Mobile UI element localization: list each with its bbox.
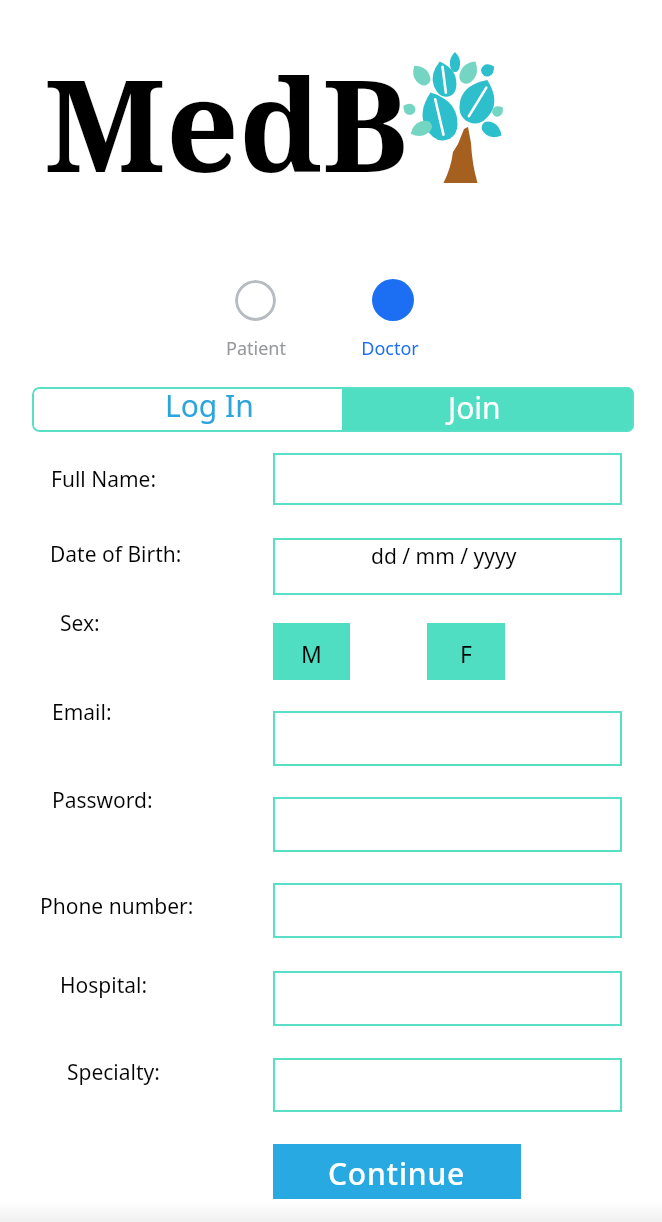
button[interactable] [273,883,622,938]
button[interactable] [273,538,622,595]
staticText: Join [448,387,501,428]
button[interactable] [273,971,622,1026]
button[interactable] [273,711,622,766]
staticText: Email: [52,698,112,727]
staticText: Password: [52,786,153,815]
staticText: Hospital: [60,971,148,1000]
staticText: Continue [328,1153,466,1194]
staticText: Sex: [60,609,100,638]
button[interactable] [235,280,276,321]
staticText: F [460,638,472,669]
button[interactable] [342,387,634,432]
staticText: Doctor [361,336,419,361]
staticText: Specialty: [67,1058,160,1087]
staticText: MedB [44,35,409,209]
staticText: M [301,638,322,669]
button[interactable]: F [427,623,505,680]
staticText: Phone number: [40,892,194,921]
button[interactable]: Continue [273,1144,521,1199]
button[interactable]: M [273,623,350,680]
staticText: Date of Birth: [50,540,182,569]
button[interactable] [273,453,622,505]
button[interactable] [372,279,414,321]
button[interactable] [273,797,622,852]
button[interactable] [273,1058,622,1112]
staticText: Full Name: [51,465,157,494]
staticText: Patient [226,336,286,361]
staticText: dd / mm / yyyy [371,542,517,570]
button[interactable] [32,387,342,432]
staticText: Log In [165,385,254,426]
